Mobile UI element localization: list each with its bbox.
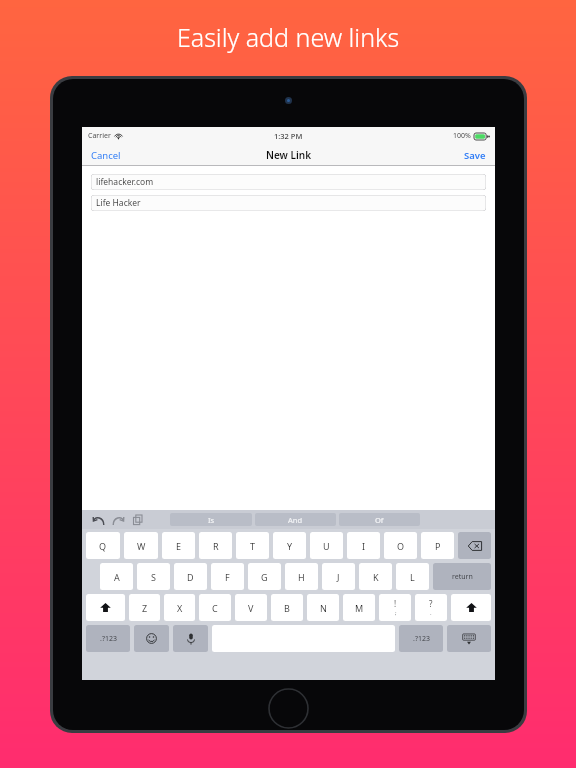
button[interactable]: return [433, 563, 491, 590]
staticText: W [137, 540, 146, 552]
staticText: A [114, 571, 120, 583]
button[interactable]: U [310, 532, 343, 559]
staticText: R [213, 540, 219, 552]
button[interactable]: G [248, 563, 281, 590]
staticText: F [225, 571, 230, 583]
staticText: E [176, 540, 182, 552]
button[interactable]: P [421, 532, 454, 559]
staticText: 1:32 PM [274, 131, 303, 141]
button[interactable]: Z [129, 594, 160, 621]
staticText: G [261, 571, 268, 583]
button[interactable]: O [384, 532, 417, 559]
button[interactable]: A [100, 563, 133, 590]
staticText: S [151, 571, 156, 583]
button[interactable]: N [307, 594, 339, 621]
button[interactable]: Of [339, 513, 420, 526]
button[interactable]: H [285, 563, 318, 590]
button[interactable]: K [359, 563, 392, 590]
button[interactable]: .?123 [399, 625, 443, 652]
staticText: C [212, 602, 218, 614]
button[interactable]: B [271, 594, 303, 621]
staticText: lifehacker.com [96, 176, 154, 188]
other: Home [268, 688, 309, 729]
button[interactable]: Is [170, 513, 252, 526]
button[interactable]: Cancel [82, 144, 130, 166]
staticText: T [250, 540, 256, 552]
button[interactable]: Life Hacker [91, 195, 486, 211]
staticText: return [452, 572, 473, 582]
button[interactable]: W [124, 532, 158, 559]
button[interactable]: Backspace [458, 532, 491, 559]
staticText: Is [208, 515, 215, 525]
button[interactable]: X [164, 594, 195, 621]
staticText: Easily add new links [0, 20, 576, 54]
staticText: U [323, 540, 330, 552]
button[interactable]: ! [379, 594, 411, 621]
staticText: M [355, 602, 364, 614]
staticText: Y [287, 540, 293, 552]
staticText: Of [375, 515, 384, 525]
staticText: B [284, 602, 290, 614]
button[interactable]: Save [455, 144, 495, 166]
staticText: L [410, 571, 415, 583]
button[interactable]: .?123 [86, 625, 130, 652]
staticText: New Link [266, 148, 312, 162]
button[interactable]: ? [415, 594, 447, 621]
button[interactable]: J [322, 563, 355, 590]
button[interactable]: R [199, 532, 232, 559]
button[interactable]: C [199, 594, 231, 621]
staticText: Life Hacker [96, 197, 141, 209]
staticText: .?123 [413, 634, 430, 644]
button[interactable]: S [137, 563, 170, 590]
staticText: V [248, 602, 254, 614]
button[interactable]: Hide keyboard [447, 625, 491, 652]
staticText: ? [429, 598, 433, 609]
button[interactable]: lifehacker.com [91, 174, 486, 190]
button[interactable]: Shift [86, 594, 125, 621]
button[interactable]: Y [273, 532, 306, 559]
button[interactable]: And [255, 513, 336, 526]
button[interactable]: Emoji [134, 625, 169, 652]
staticText: Carrier [88, 131, 111, 141]
staticText: N [320, 602, 327, 614]
staticText: 100% [453, 131, 471, 141]
button[interactable]: V [235, 594, 267, 621]
button[interactable]: Dictation [173, 625, 208, 652]
staticText: O [397, 540, 405, 552]
button[interactable]: Undo [90, 512, 106, 528]
staticText: . [430, 609, 432, 617]
staticText: Z [142, 602, 148, 614]
staticText: H [298, 571, 305, 583]
button[interactable]: I [347, 532, 380, 559]
staticText: Q [99, 540, 107, 552]
button[interactable]: E [162, 532, 195, 559]
button[interactable]: M [343, 594, 375, 621]
button[interactable]: Redo [110, 512, 126, 528]
button[interactable]: D [174, 563, 207, 590]
button[interactable]: L [396, 563, 429, 590]
staticText: I [362, 540, 366, 552]
staticText: D [187, 571, 194, 583]
staticText: Save [464, 149, 486, 162]
staticText: And [288, 515, 303, 525]
staticText: .?123 [100, 634, 117, 644]
button[interactable]: T [236, 532, 269, 559]
staticText: Cancel [91, 149, 121, 162]
button[interactable]: F [211, 563, 244, 590]
button[interactable]: Shift [451, 594, 491, 621]
button[interactable]: Paste [130, 512, 146, 528]
staticText: ; [395, 609, 397, 617]
staticText: P [435, 540, 441, 552]
staticText: K [373, 571, 379, 583]
staticText: X [177, 602, 183, 614]
staticText: ! [394, 598, 397, 609]
button[interactable]: Q [86, 532, 120, 559]
staticText: J [337, 571, 340, 583]
